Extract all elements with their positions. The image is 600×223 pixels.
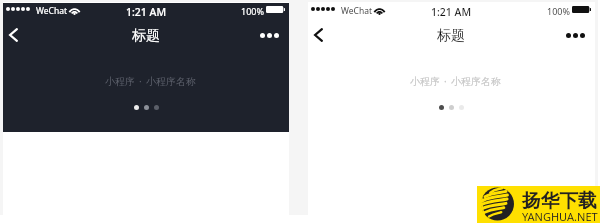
staticText: · [444,74,447,88]
staticText: YANGHUA.NET [522,209,598,223]
staticText: 小程序 [410,75,440,88]
staticText: 标题 [437,27,465,45]
staticText: 1:21 AM [431,5,472,19]
staticText: WeChat [36,5,67,17]
staticText: 标题 [132,27,160,45]
button[interactable]: Back [2,23,24,47]
staticText: 小程序名称 [146,75,196,88]
button[interactable]: More options [566,33,585,38]
staticText: 扬华下载 [522,189,597,213]
staticText: WeChat [341,5,372,17]
staticText: 100% [547,5,570,17]
staticText: 1:21 AM [126,5,167,19]
staticText: 小程序 [105,75,135,88]
staticText: · [139,74,142,88]
button[interactable]: More options [260,33,279,38]
staticText: 小程序名称 [451,75,501,88]
button[interactable]: Back [307,23,329,47]
staticText: 100% [241,5,264,17]
